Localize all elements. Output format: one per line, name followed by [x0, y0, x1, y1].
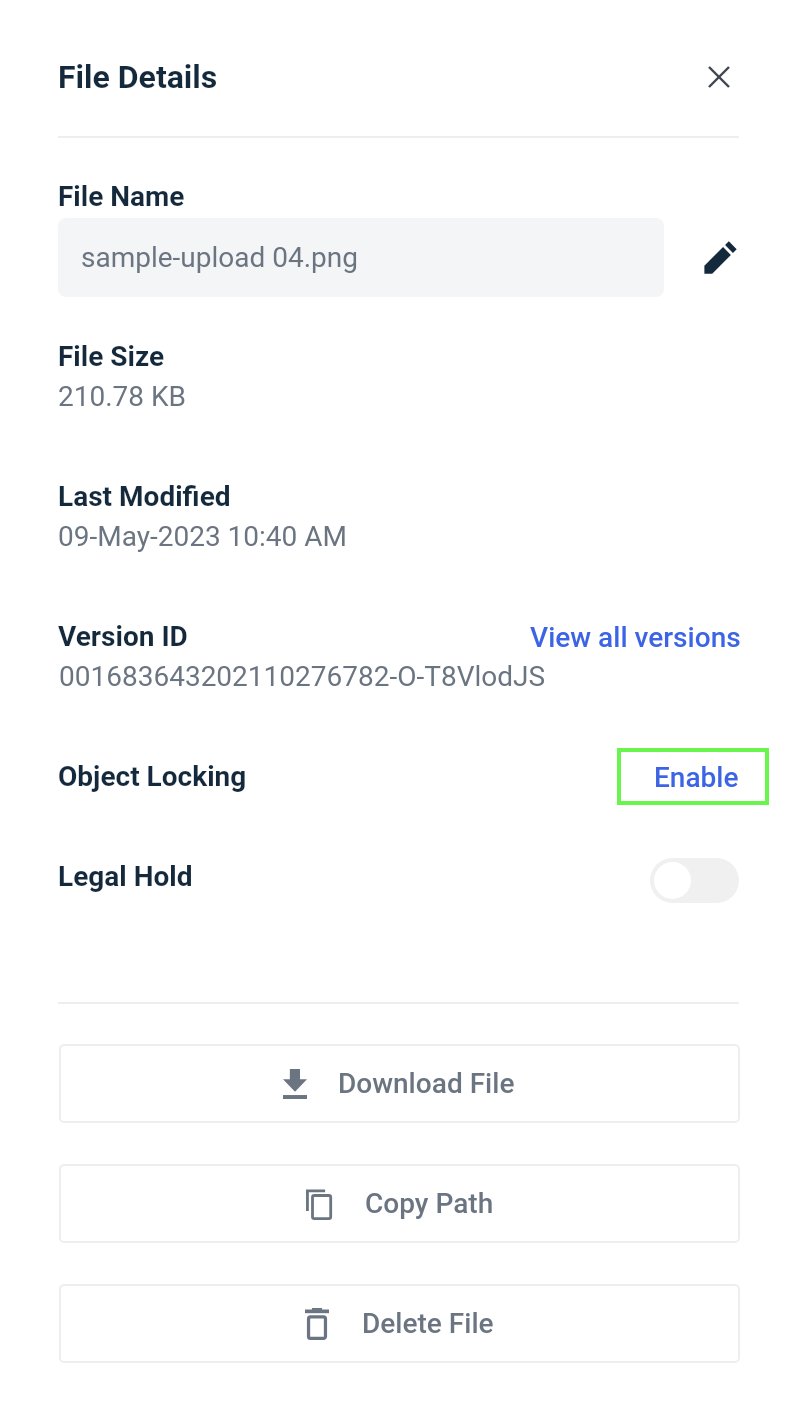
staticText: Delete File	[362, 1307, 494, 1340]
staticText: Download File	[338, 1067, 515, 1100]
staticText: View all versions	[530, 621, 741, 654]
staticText: 09-May-2023 10:40 AM	[58, 520, 347, 553]
staticText: Legal Hold	[58, 860, 193, 893]
staticText: 210.78 KB	[58, 380, 187, 413]
button[interactable]: Close	[698, 56, 740, 98]
button[interactable]: Delete File	[59, 1284, 740, 1363]
staticText: 001683643202110276782-O-T8VlodJS	[59, 660, 546, 693]
button[interactable]: View all versions	[530, 621, 741, 654]
staticText: Version ID	[58, 620, 188, 653]
button[interactable]: Legal Hold toggle	[650, 858, 739, 903]
staticText: File Name	[58, 180, 185, 213]
staticText: Object Locking	[58, 760, 247, 793]
button[interactable]: File Details	[58, 58, 218, 96]
button[interactable]: Edit file name	[699, 237, 741, 279]
staticText: Enable	[654, 761, 739, 794]
button[interactable]: Enable	[617, 748, 769, 805]
staticText: Last Modified	[58, 480, 231, 513]
staticText: File Size	[58, 340, 165, 373]
staticText: sample-upload 04.png	[81, 241, 359, 274]
button[interactable]: Copy Path	[59, 1164, 740, 1243]
staticText: Copy Path	[365, 1187, 494, 1220]
button[interactable]: Download File	[59, 1044, 740, 1123]
button[interactable]: sample-upload 04.png	[58, 218, 664, 297]
staticText: File Details	[58, 58, 218, 96]
